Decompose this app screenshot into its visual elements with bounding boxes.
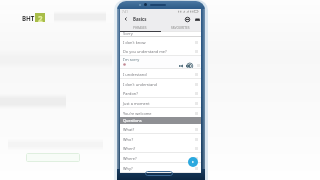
button[interactable]: Do you understand me? — [120, 46, 201, 56]
button[interactable]: I'm sorry — [120, 56, 201, 69]
staticText: When? — [123, 146, 136, 151]
staticText: Where? — [123, 156, 137, 161]
staticText: Pardon? — [123, 91, 138, 96]
button[interactable]: Who? — [120, 134, 201, 144]
staticText: Just a moment — [123, 101, 150, 106]
staticText: You're welcome — [123, 111, 152, 116]
button[interactable]: FAVOURITES — [160, 24, 201, 32]
staticText: Questions — [123, 118, 142, 123]
staticText: What? — [123, 127, 135, 132]
staticText: BHT — [22, 14, 35, 22]
staticText: I don't understand — [123, 82, 157, 87]
button[interactable]: Just a moment — [120, 98, 201, 108]
staticText: I don't know — [123, 40, 146, 45]
staticText: PHRASES — [133, 26, 147, 30]
staticText: Sorry — [123, 31, 133, 36]
staticText: I'm sorry — [123, 57, 140, 62]
button[interactable]: PHRASES — [120, 24, 160, 32]
button[interactable]: Pardon? — [120, 88, 201, 98]
button[interactable]: Record audio — [184, 16, 190, 22]
staticText: Who? — [123, 137, 134, 142]
button[interactable]: I understand — [120, 69, 201, 79]
staticText: I understand — [123, 72, 147, 77]
staticText: Do you understand me? — [123, 49, 167, 54]
button[interactable]: You're welcome — [120, 108, 201, 118]
button[interactable]: Where? — [120, 153, 201, 163]
staticText: Basics — [133, 16, 147, 22]
button[interactable]: Play phrase — [188, 157, 198, 167]
staticText: FAVOURITES — [171, 26, 190, 30]
button[interactable]: I don't know — [120, 37, 201, 47]
staticText: 7:41 — [122, 10, 128, 14]
button[interactable]: I don't understand — [120, 79, 201, 89]
button[interactable]: Why? — [120, 163, 201, 173]
button[interactable]: Back — [123, 16, 129, 22]
button[interactable]: What? — [120, 124, 201, 134]
button[interactable]: Sorry — [120, 32, 201, 37]
button[interactable]: When? — [120, 143, 201, 153]
staticText: 2 — [38, 13, 43, 22]
staticText: Why? — [123, 166, 133, 171]
button[interactable]: Keyboard — [194, 16, 200, 22]
